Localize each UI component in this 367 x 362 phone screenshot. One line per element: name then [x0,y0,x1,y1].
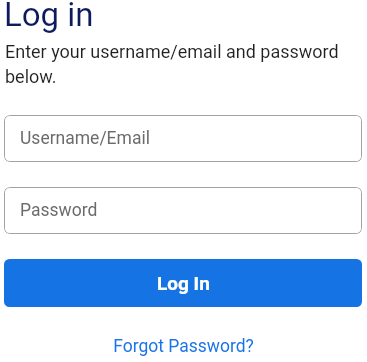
button[interactable]: Username/Email [4,115,362,162]
staticText: Log in [4,0,94,34]
button[interactable]: Log In [4,259,362,307]
staticText: Username/Email [20,128,150,149]
staticText: Password [20,200,98,221]
staticText: Enter your username/email and password b… [5,41,339,87]
button[interactable]: Password [4,187,362,234]
button[interactable]: Forgot Password? [0,336,367,357]
staticText: Forgot Password? [113,336,254,357]
staticText: Log In [157,272,210,294]
